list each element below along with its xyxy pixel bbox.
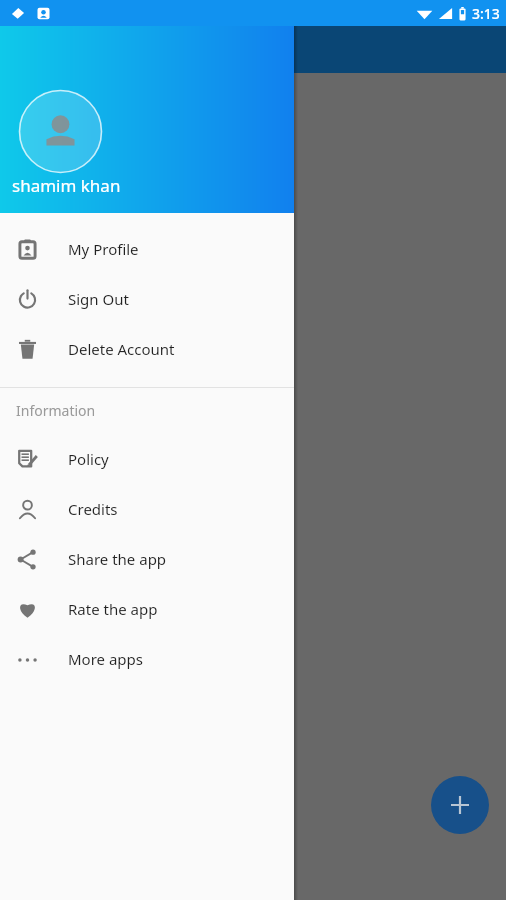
button[interactable]: More apps xyxy=(0,634,294,684)
button[interactable]: Share the app xyxy=(0,534,294,584)
staticText: More apps xyxy=(68,649,143,669)
staticText: Information xyxy=(16,401,96,420)
staticText: My Profile xyxy=(68,239,139,259)
staticText: Policy xyxy=(68,449,109,469)
button[interactable]: Policy xyxy=(0,434,294,484)
staticText: Share the app xyxy=(68,549,167,569)
button[interactable]: My Profile xyxy=(0,224,294,274)
staticText: 3:13 xyxy=(472,4,500,23)
button[interactable]: Rate the app xyxy=(0,584,294,634)
staticText: Sign Out xyxy=(68,289,129,309)
button[interactable]: Credits xyxy=(0,484,294,534)
button[interactable]: Delete Account xyxy=(0,324,294,374)
staticText: Delete Account xyxy=(68,339,175,359)
staticText: Credits xyxy=(68,499,118,519)
staticText: Rate the app xyxy=(68,599,158,619)
staticText: shamim khan xyxy=(12,174,121,197)
button[interactable]: Add xyxy=(431,776,489,834)
button[interactable]: Sign Out xyxy=(0,274,294,324)
